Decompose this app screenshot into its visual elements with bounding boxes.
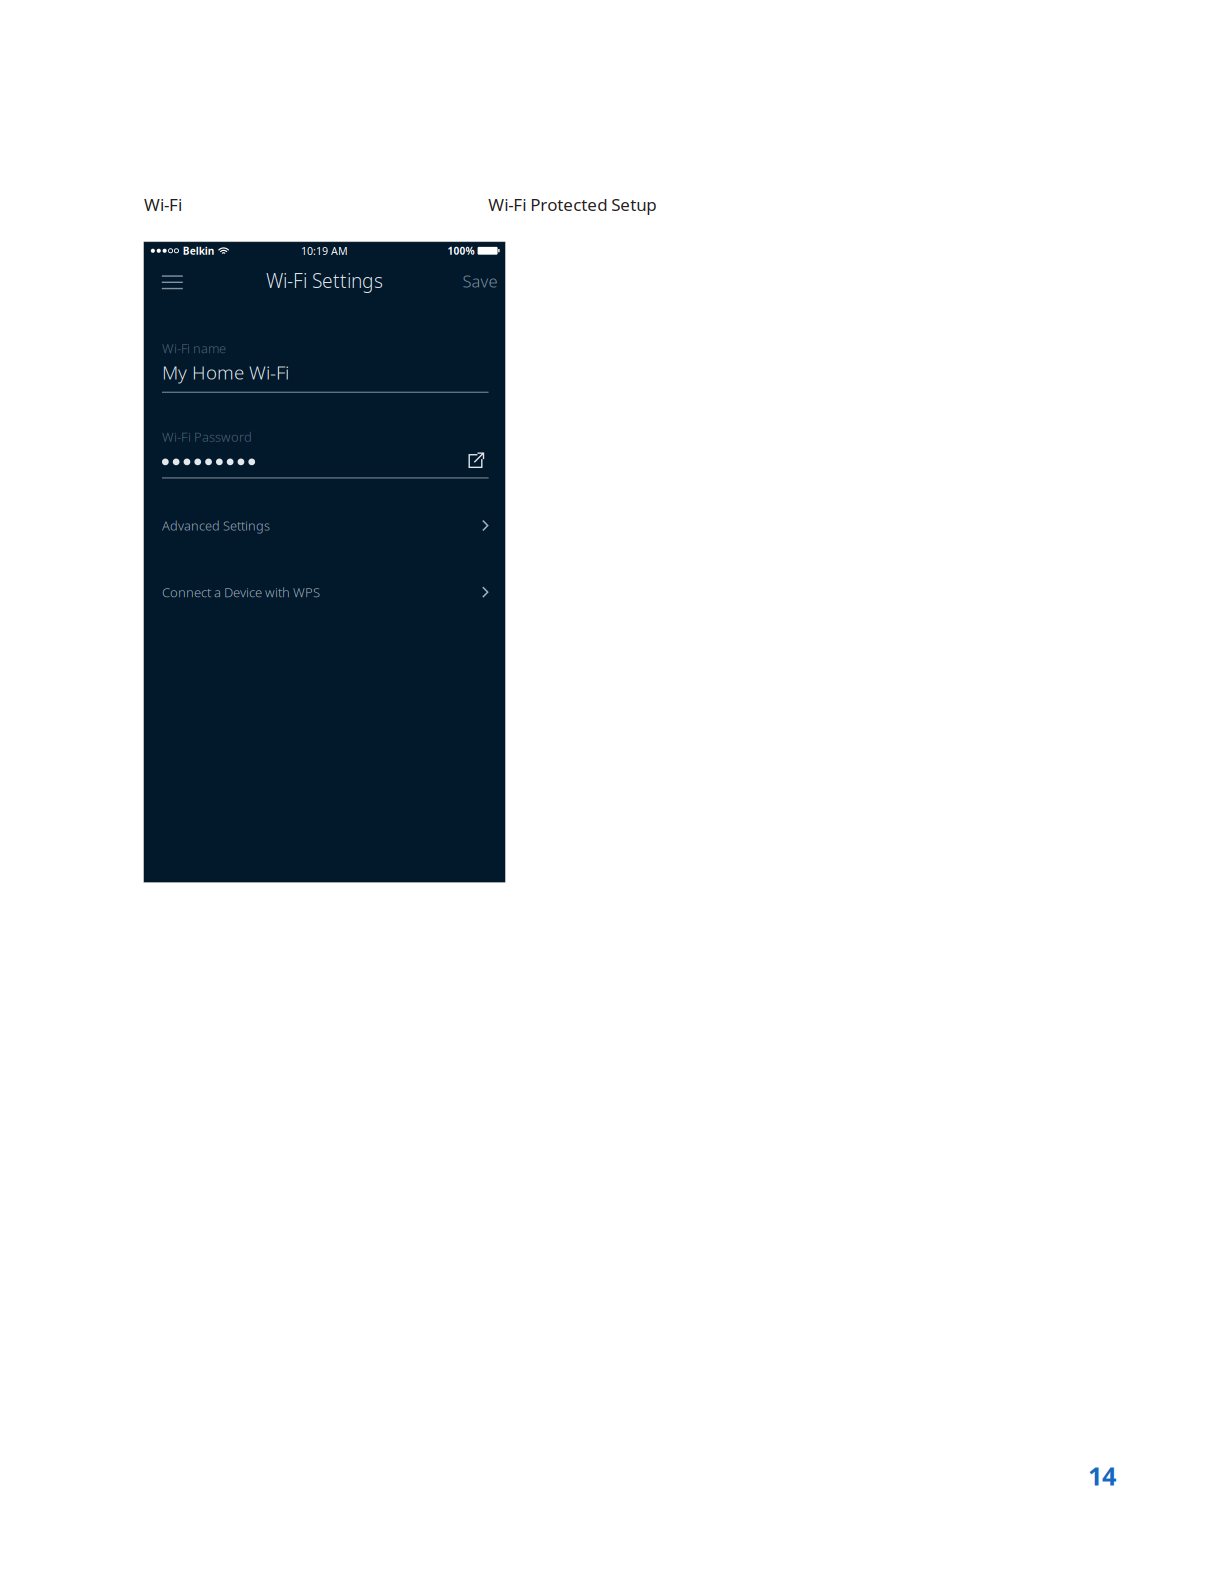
staticText: 10:19 AM	[301, 243, 348, 258]
staticText: My Home Wi-Fi	[162, 359, 289, 385]
staticText: Wi-Fi Password	[162, 428, 252, 445]
staticText: Wi-Fi name	[162, 340, 226, 357]
staticText: Connect a Device with WPS	[162, 583, 320, 601]
staticText: Wi-Fi Protected Setup	[488, 193, 656, 216]
button[interactable]: Advanced Settings	[162, 512, 489, 538]
button[interactable]: Connect a Device with WPS	[162, 579, 489, 605]
staticText: 14	[1088, 1458, 1116, 1493]
staticText: 100%	[448, 244, 475, 258]
button[interactable]: Menu	[153, 262, 191, 299]
staticText: Wi-Fi Settings	[266, 267, 383, 294]
staticText: Advanced Settings	[162, 517, 270, 534]
staticText: Save	[462, 270, 497, 292]
staticText: Belkin	[183, 244, 215, 258]
staticText: Wi-Fi	[144, 193, 182, 216]
button[interactable]: Share Wi-Fi password	[464, 451, 489, 473]
button[interactable]: Save	[451, 263, 497, 298]
